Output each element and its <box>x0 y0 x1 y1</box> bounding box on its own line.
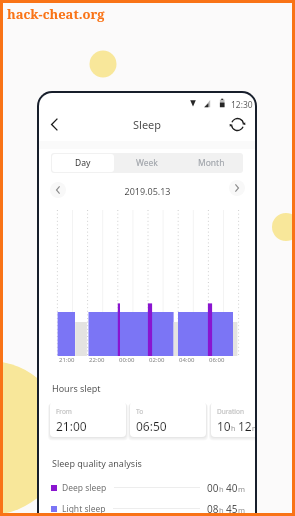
staticText: 12 <box>238 418 252 434</box>
staticText: hack-cheat.org <box>7 5 105 23</box>
button[interactable]: Day <box>52 154 114 172</box>
button[interactable]: Month <box>179 153 243 173</box>
button[interactable]: Deep sleep <box>51 481 246 494</box>
staticText: 21:00 <box>59 356 75 364</box>
staticText: 00:00 <box>119 356 135 364</box>
staticText: 04:00 <box>179 356 195 364</box>
staticText: 08 <box>207 502 219 515</box>
button[interactable]: Back <box>42 112 66 136</box>
staticText: 40 <box>226 481 238 494</box>
staticText: Sleep <box>133 117 162 132</box>
staticText: From <box>56 407 72 416</box>
staticText: m <box>238 484 246 494</box>
staticText: Day <box>75 157 91 169</box>
staticText: 21:00 <box>56 418 87 434</box>
staticText: 06:00 <box>209 356 225 364</box>
staticText: Duration <box>217 407 244 416</box>
button[interactable]: Light sleep <box>51 502 246 515</box>
staticText: 22:00 <box>89 356 105 364</box>
staticText: Week <box>136 157 158 169</box>
staticText: h <box>219 505 224 515</box>
staticText: To <box>136 407 144 416</box>
staticText: m <box>238 505 246 515</box>
staticText: Hours slept <box>52 382 101 394</box>
button[interactable]: To <box>130 402 206 437</box>
staticText: h <box>219 484 224 494</box>
staticText: 45 <box>226 502 238 515</box>
staticText: Month <box>198 157 225 169</box>
button[interactable]: Next day <box>229 180 245 196</box>
staticText: m <box>252 424 255 434</box>
staticText: h <box>231 424 236 434</box>
button[interactable]: Previous day <box>50 182 66 198</box>
staticText: Sleep quality analysis <box>52 457 142 469</box>
staticText: Light sleep <box>62 503 106 515</box>
button[interactable]: From <box>50 402 126 437</box>
staticText: 2019.05.13 <box>124 185 171 197</box>
staticText: 12:30 <box>231 99 253 111</box>
staticText: 06:50 <box>136 418 167 434</box>
button[interactable]: Week <box>115 153 179 173</box>
button[interactable]: Refresh <box>225 112 249 136</box>
button[interactable]: Duration <box>211 402 255 437</box>
staticText: 02:00 <box>149 356 165 364</box>
staticText: 10 <box>217 418 231 434</box>
staticText: Deep sleep <box>62 482 107 494</box>
staticText: 00 <box>207 481 219 494</box>
